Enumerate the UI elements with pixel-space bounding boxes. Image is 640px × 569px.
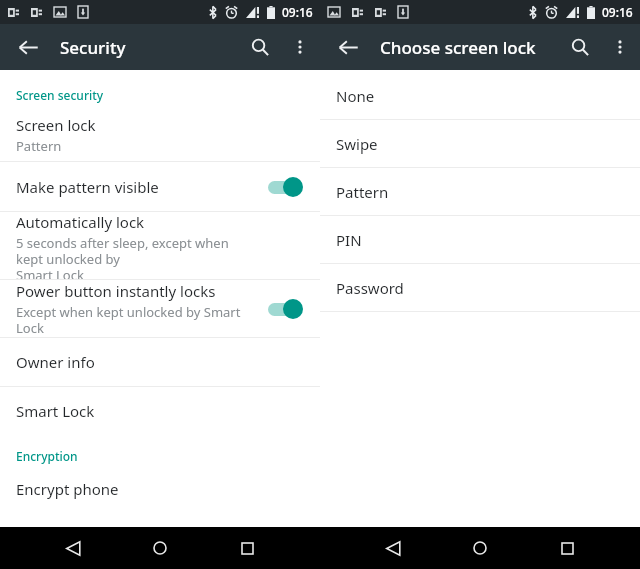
staticText: Screen lock [16, 115, 96, 135]
staticText: Encryption [16, 448, 78, 464]
button[interactable]: Swipe [320, 120, 640, 167]
staticText: Password [336, 278, 404, 298]
button[interactable]: Home [139, 527, 181, 569]
staticText: PIN [336, 230, 362, 250]
button[interactable]: Home [459, 527, 501, 569]
button[interactable]: Back [52, 527, 94, 569]
button[interactable]: Back [372, 527, 414, 569]
button[interactable]: More options [280, 27, 320, 67]
button[interactable]: Search [560, 27, 600, 67]
button[interactable]: Automatically lock [0, 212, 320, 279]
staticText: Swipe [336, 134, 378, 154]
staticText: Security [60, 36, 126, 59]
staticText: Encrypt phone [16, 479, 119, 499]
button[interactable]: Recents [546, 527, 588, 569]
button[interactable]: Owner info [0, 338, 320, 386]
button[interactable]: Pattern [320, 168, 640, 215]
button[interactable]: More options [600, 27, 640, 67]
staticText: Make pattern visible [16, 177, 159, 197]
staticText: 09:16 [602, 4, 633, 20]
staticText: Owner info [16, 352, 95, 372]
button[interactable]: Smart Lock [0, 387, 320, 435]
button[interactable]: Back [328, 27, 368, 67]
staticText: None [336, 86, 375, 106]
button[interactable]: Screen lock [0, 109, 320, 161]
staticText: Pattern [16, 137, 62, 155]
button[interactable]: Search [240, 27, 280, 67]
button[interactable]: Make pattern visible [0, 162, 320, 211]
staticText: Screen security [16, 87, 104, 103]
staticText: Choose screen lock [380, 36, 536, 59]
button[interactable]: Recents [226, 527, 268, 569]
staticText: Smart Lock [16, 401, 95, 421]
staticText: Pattern [336, 182, 389, 202]
button[interactable]: Encrypt phone [0, 469, 320, 509]
button[interactable]: Back [8, 27, 48, 67]
button[interactable]: None [320, 72, 640, 119]
staticText: Except when kept unlocked by Smart Lock [16, 303, 250, 336]
staticText: Power button instantly locks [16, 281, 216, 301]
staticText: 09:16 [282, 4, 313, 20]
staticText: Automatically lock [16, 212, 145, 232]
button[interactable]: PIN [320, 216, 640, 263]
button[interactable]: Password [320, 264, 640, 311]
staticText: 5 seconds after sleep, except when kept … [16, 234, 250, 279]
button[interactable]: Power button instantly locks [0, 280, 320, 337]
